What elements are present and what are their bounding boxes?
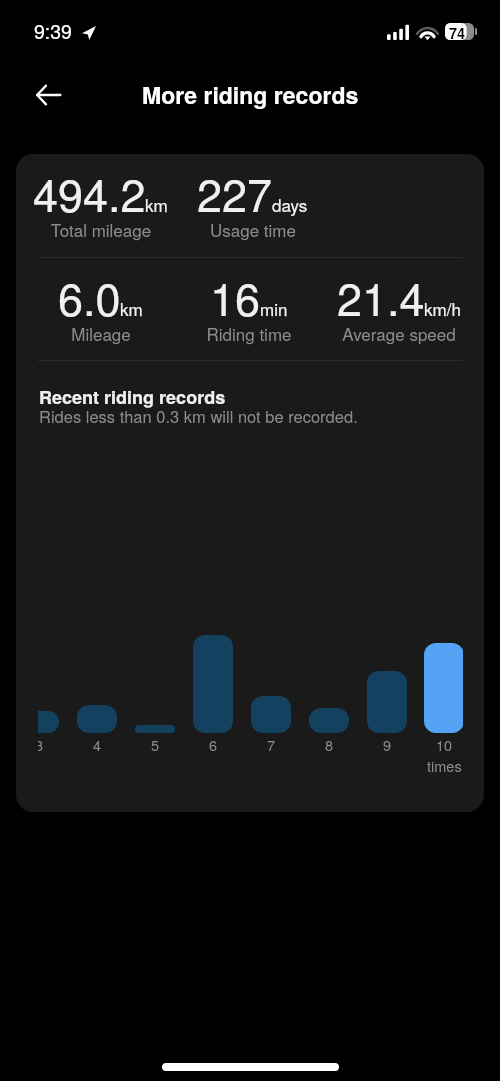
staticText: km [145,192,168,216]
button[interactable]: Day 9 riding record [358,671,416,755]
staticText: 8 [325,734,334,755]
button[interactable]: Day 8 riding record [300,708,358,755]
staticText: 5 [151,734,160,755]
button[interactable]: Day 6 riding record [184,635,242,755]
staticText: 4 [93,734,102,755]
button[interactable]: Day 5 riding record [126,725,184,755]
staticText: km/h [424,296,461,320]
staticText: times [427,755,462,776]
staticText: 227 [197,160,273,224]
staticText: min [260,296,288,320]
staticText: More riding records [142,78,359,111]
staticText: 9:39 [34,17,72,45]
staticText: 21.4 [337,264,425,328]
staticText: 6 [209,734,218,755]
staticText: 10 [436,734,453,755]
button[interactable]: Day 4 riding record [68,705,126,755]
button[interactable]: Day 7 riding record [242,696,300,755]
staticText: 6.0 [58,264,121,328]
staticText: 16 [210,264,261,328]
staticText: Mileage [16,321,251,345]
button[interactable]: Day 10 riding record [416,643,463,755]
staticText: Rides less than 0.3 km will not be recor… [39,404,358,428]
staticText: Recent riding records [39,384,226,410]
staticText: 74 [446,23,468,40]
staticText: 9 [383,734,392,755]
staticText: 494.2 [33,160,146,224]
staticText: days [272,192,308,216]
staticText: km [120,296,143,320]
staticText: Riding time [99,321,399,345]
staticText: Total mileage [16,217,251,241]
staticText: 3 [38,734,44,755]
staticText: Usage time [103,217,403,241]
button[interactable]: Day 3 riding record [38,711,68,755]
staticText: Average speed [249,321,484,345]
staticText: 7 [267,734,276,755]
button[interactable]: Back [32,79,64,111]
